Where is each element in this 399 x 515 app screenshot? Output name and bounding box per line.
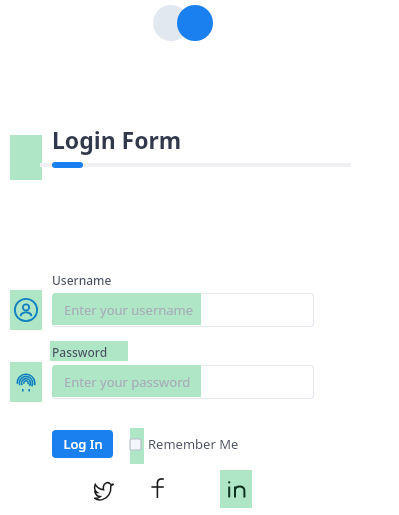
button[interactable]: Enter your username	[52, 293, 314, 327]
staticText: Remember Me	[148, 435, 239, 453]
button[interactable]: Facebook	[141, 472, 173, 504]
button[interactable]: Username	[10, 290, 42, 330]
staticText: Enter your password	[64, 373, 191, 391]
staticText: Password	[52, 344, 108, 360]
button[interactable]: Remember Me	[130, 434, 239, 454]
button[interactable]: LinkedIn	[220, 470, 252, 508]
staticText: Login Form	[52, 124, 182, 155]
button[interactable]: Password	[10, 362, 42, 402]
button[interactable]: Toggle	[152, 4, 214, 42]
staticText: Log In	[63, 435, 103, 453]
button[interactable]: Twitter	[88, 474, 120, 506]
staticText: Username	[52, 272, 112, 288]
button[interactable]: Log In	[52, 430, 113, 458]
staticText: Enter your username	[64, 301, 194, 319]
button[interactable]: Enter your password	[52, 365, 314, 399]
